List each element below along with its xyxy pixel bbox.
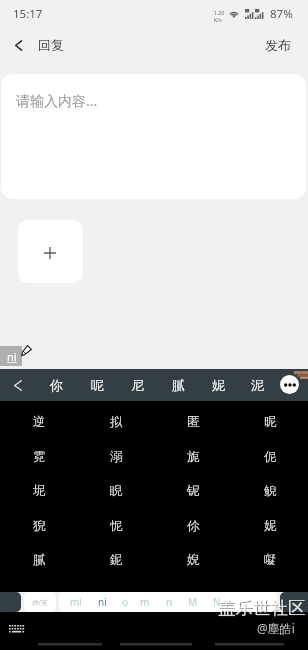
staticText: 1.20: [214, 9, 225, 16]
button[interactable]: Add image: [18, 220, 83, 283]
button[interactable]: More options: [280, 375, 299, 394]
button[interactable]: ni: [91, 592, 113, 612]
staticText: 腻: [172, 377, 185, 393]
button[interactable]: 猊: [22, 509, 56, 543]
button[interactable]: 妮: [200, 369, 236, 401]
button[interactable]: 拼/英: [24, 592, 56, 612]
button[interactable]: 旎: [176, 440, 210, 474]
staticText: 请输入内容...: [16, 91, 98, 110]
staticText: 㘈: [264, 552, 277, 568]
staticText: 腻: [33, 552, 46, 568]
staticText: 睨: [110, 483, 123, 499]
button[interactable]: 溺: [99, 440, 133, 474]
staticText: N: [213, 595, 221, 609]
button[interactable]: 坭: [22, 474, 56, 508]
button[interactable]: 呢: [79, 369, 115, 401]
staticText: 伲: [264, 449, 277, 465]
button[interactable]: 鲵: [253, 474, 287, 508]
button[interactable]: mi: [65, 592, 87, 612]
button[interactable]: 腻: [22, 543, 56, 577]
staticText: 你: [50, 377, 63, 393]
button[interactable]: m: [134, 592, 156, 612]
staticText: n: [166, 595, 173, 609]
staticText: 拼/英: [32, 598, 48, 607]
staticText: 匿: [187, 414, 200, 430]
staticText: 怩: [110, 518, 123, 534]
staticText: 呢: [91, 377, 104, 393]
button[interactable]: 怩: [99, 509, 133, 543]
button[interactable]: 匿: [176, 405, 210, 439]
staticText: 婗: [187, 552, 200, 568]
staticText: 泥: [251, 377, 264, 393]
staticText: 伱: [187, 518, 200, 534]
button[interactable]: 睨: [99, 474, 133, 508]
button[interactable]: 逆: [22, 405, 56, 439]
button[interactable]: 鈮: [99, 543, 133, 577]
button[interactable]: 昵: [253, 405, 287, 439]
button[interactable]: 㘈: [253, 543, 287, 577]
staticText: 盖乐世社区: [218, 597, 306, 619]
staticText: M: [188, 595, 198, 609]
staticText: o: [122, 595, 129, 609]
button[interactable]: 铌: [176, 474, 210, 508]
staticText: @塵皓i: [257, 620, 295, 636]
staticText: 霓: [33, 449, 46, 465]
button[interactable]: 伲: [253, 440, 287, 474]
staticText: m: [140, 595, 150, 609]
button[interactable]: 你: [38, 369, 74, 401]
staticText: 拟: [110, 414, 123, 430]
button[interactable]: 霓: [22, 440, 56, 474]
button[interactable]: 婗: [176, 543, 210, 577]
staticText: 发布: [265, 37, 291, 53]
button[interactable]: 请输入内容...: [1, 74, 306, 199]
staticText: 鲵: [264, 483, 277, 499]
staticText: 溺: [110, 449, 123, 465]
staticText: mi: [70, 595, 82, 609]
staticText: ni: [98, 595, 107, 609]
staticText: 回复: [38, 37, 64, 53]
button[interactable]: Hide keyboard: [5, 621, 29, 639]
staticText: 妮: [212, 377, 225, 393]
staticText: 坭: [33, 483, 46, 499]
button[interactable]: o: [114, 592, 136, 612]
button[interactable]: Delete: [280, 592, 308, 612]
staticText: K/s: [214, 16, 222, 23]
button[interactable]: Back: [0, 369, 36, 401]
staticText: 盖乐世社区: [219, 598, 307, 620]
staticText: 尼: [131, 377, 144, 393]
button[interactable]: 发布: [247, 29, 308, 61]
button[interactable]: 腻: [160, 369, 196, 401]
staticText: 铌: [187, 483, 200, 499]
button[interactable]: N: [206, 592, 228, 612]
staticText: ni: [7, 349, 17, 364]
button[interactable]: 拟: [99, 405, 133, 439]
staticText: 15:17: [13, 6, 43, 22]
button[interactable]: M: [182, 592, 204, 612]
button[interactable]: 尼: [119, 369, 155, 401]
staticText: 鈮: [110, 552, 123, 568]
staticText: 昵: [264, 414, 277, 430]
staticText: 旎: [187, 449, 200, 465]
staticText: 逆: [33, 414, 46, 430]
button[interactable]: n: [158, 592, 180, 612]
button[interactable]: 回复: [0, 29, 76, 61]
button[interactable]: 泥: [239, 369, 275, 401]
button[interactable]: Symbols: [0, 592, 21, 612]
button[interactable]: 妮: [253, 509, 287, 543]
staticText: 妮: [264, 518, 277, 534]
staticText: 猊: [33, 518, 46, 534]
button[interactable]: 伱: [176, 509, 210, 543]
staticText: 87%: [270, 6, 293, 22]
